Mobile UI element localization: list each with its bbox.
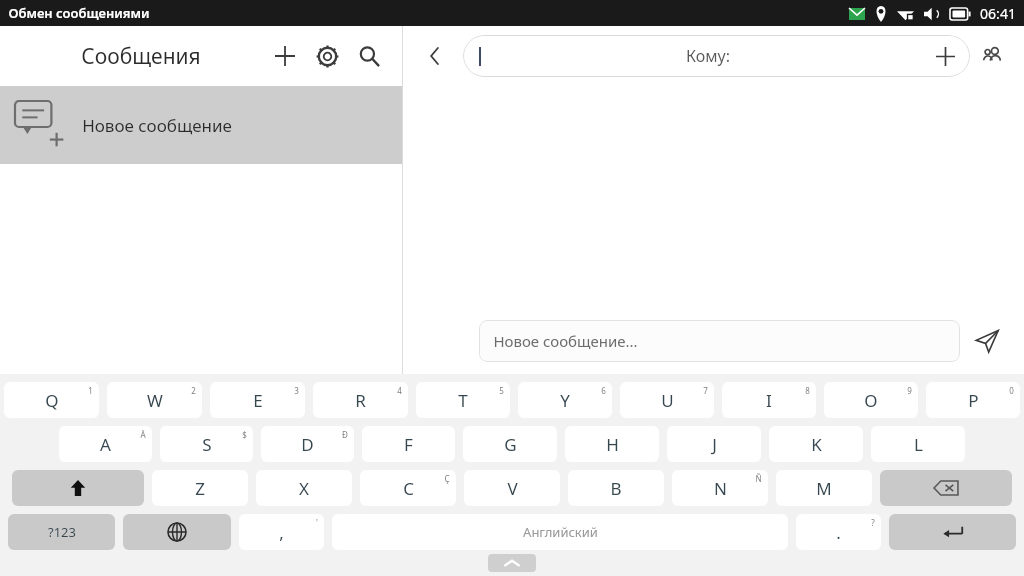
staticText: U: [661, 389, 674, 412]
staticText: 4: [397, 385, 402, 396]
staticText: 7: [703, 385, 708, 396]
button[interactable]: B: [568, 470, 664, 506]
staticText: $: [242, 429, 247, 440]
staticText: J: [712, 433, 717, 456]
staticText: N: [714, 477, 727, 500]
staticText: S: [202, 433, 212, 456]
button[interactable]: E: [210, 382, 305, 418]
staticText: Ñ: [755, 473, 762, 484]
button[interactable]: L: [871, 426, 965, 462]
staticText: ?: [871, 517, 875, 528]
staticText: 1: [88, 385, 93, 396]
staticText: Английский: [523, 523, 598, 541]
button[interactable]: P: [926, 382, 1020, 418]
button[interactable]: K: [769, 426, 863, 462]
button[interactable]: Кому:: [463, 35, 970, 77]
staticText: 8: [805, 385, 810, 396]
button[interactable]: C: [360, 470, 456, 506]
staticText: 0: [1009, 385, 1014, 396]
staticText: O: [864, 389, 878, 412]
staticText: 06:41: [980, 4, 1016, 23]
button[interactable]: Send: [960, 314, 1014, 368]
button[interactable]: G: [463, 426, 557, 462]
button[interactable]: Английский: [332, 514, 788, 550]
staticText: W: [147, 389, 163, 412]
staticText: L: [914, 433, 923, 456]
staticText: B: [610, 477, 622, 500]
button[interactable]: Search: [348, 35, 390, 77]
staticText: Обмен сообщениями: [8, 4, 150, 22]
button[interactable]: Y: [518, 382, 612, 418]
button[interactable]: O: [824, 382, 918, 418]
button[interactable]: .: [796, 514, 881, 550]
staticText: E: [253, 389, 263, 412]
staticText: ,: [279, 521, 284, 544]
staticText: P: [968, 389, 979, 412]
staticText: Đ: [342, 429, 348, 440]
button[interactable]: F: [362, 426, 455, 462]
button[interactable]: Q: [4, 382, 99, 418]
button[interactable]: Новое сообщение: [0, 86, 402, 164]
button[interactable]: M: [776, 470, 872, 506]
button[interactable]: Change language: [123, 514, 231, 550]
button[interactable]: ,: [239, 514, 324, 550]
staticText: Новое сообщение...: [493, 331, 638, 351]
staticText: M: [816, 477, 832, 500]
staticText: Y: [560, 389, 570, 412]
staticText: A: [100, 433, 111, 456]
staticText: F: [404, 433, 413, 456]
other: Add recipient: [930, 41, 960, 71]
staticText: Сообщения: [18, 42, 264, 71]
staticText: T: [458, 389, 468, 412]
staticText: Ç: [444, 473, 450, 484]
button[interactable]: U: [620, 382, 714, 418]
staticText: Кому:: [486, 45, 930, 67]
button[interactable]: Z: [152, 470, 248, 506]
staticText: 5: [499, 385, 504, 396]
button[interactable]: W: [107, 382, 202, 418]
staticText: .: [836, 521, 841, 544]
button[interactable]: A: [59, 426, 152, 462]
staticText: R: [355, 389, 366, 412]
staticText: Ä: [140, 429, 146, 440]
staticText: X: [299, 477, 309, 500]
staticText: D: [301, 433, 314, 456]
button[interactable]: New conversation: [264, 35, 306, 77]
staticText: K: [811, 433, 822, 456]
staticText: C: [403, 477, 414, 500]
staticText: 3: [294, 385, 299, 396]
button[interactable]: S: [160, 426, 253, 462]
button[interactable]: Back: [417, 38, 453, 74]
button[interactable]: N: [672, 470, 768, 506]
staticText: Q: [45, 389, 59, 412]
button[interactable]: V: [464, 470, 560, 506]
staticText: G: [504, 433, 517, 456]
button[interactable]: Новое сообщение...: [479, 320, 960, 362]
button[interactable]: ?123: [8, 514, 115, 550]
staticText: ': [316, 517, 318, 528]
staticText: I: [766, 389, 772, 412]
button[interactable]: T: [416, 382, 510, 418]
staticText: V: [507, 477, 518, 500]
staticText: Z: [195, 477, 205, 500]
staticText: 9: [907, 385, 912, 396]
button[interactable]: J: [667, 426, 761, 462]
button[interactable]: Settings: [306, 35, 348, 77]
button[interactable]: D: [261, 426, 354, 462]
button[interactable]: Enter: [889, 514, 1016, 550]
button[interactable]: Contacts: [970, 34, 1014, 78]
staticText: H: [606, 433, 619, 456]
button[interactable]: Shift: [12, 470, 144, 506]
button[interactable]: I: [722, 382, 816, 418]
button[interactable]: R: [313, 382, 408, 418]
button[interactable]: Backspace: [880, 470, 1012, 506]
staticText: Новое сообщение: [82, 114, 232, 137]
button[interactable]: H: [565, 426, 659, 462]
staticText: 6: [601, 385, 606, 396]
staticText: ?123: [48, 523, 76, 541]
button[interactable]: X: [256, 470, 352, 506]
staticText: 2: [191, 385, 196, 396]
button[interactable]: Hide keyboard: [488, 554, 536, 572]
